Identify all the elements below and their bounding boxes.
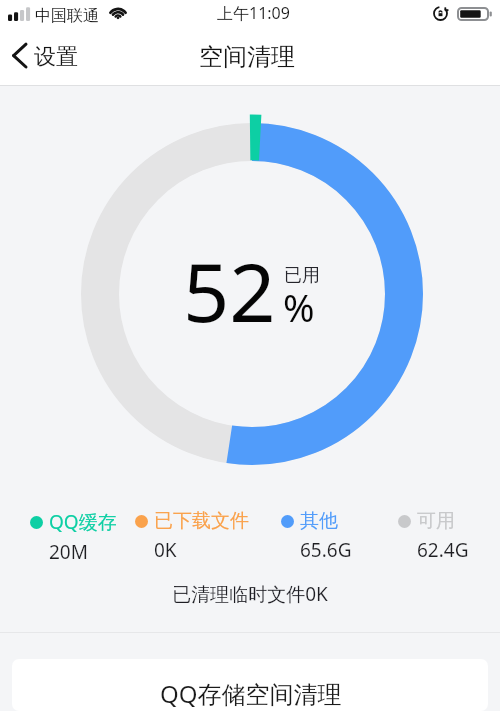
staticText: 上午11:09	[217, 2, 290, 24]
button[interactable]: 可用	[398, 509, 469, 563]
button[interactable]: 其他	[281, 509, 352, 563]
staticText: 已清理临时文件0K	[0, 581, 500, 607]
staticText: 已用	[284, 264, 320, 287]
button[interactable]: QQ存储空间清理	[12, 659, 488, 711]
staticText: 空间清理	[199, 42, 295, 72]
button[interactable]: 已下载文件	[135, 509, 249, 563]
staticText: 20M	[49, 539, 88, 565]
staticText: QQ存储空间清理	[160, 677, 342, 710]
staticText: %	[283, 281, 315, 333]
staticText: 设置	[34, 43, 78, 71]
staticText: QQ缓存	[49, 509, 117, 535]
staticText: 可用	[417, 509, 455, 533]
button[interactable]: 设置	[0, 39, 92, 79]
staticText: 62.4G	[417, 537, 469, 563]
button[interactable]: QQ缓存	[30, 509, 117, 565]
staticText: 0K	[154, 537, 177, 563]
staticText: 65.6G	[300, 537, 352, 563]
staticText: 52	[183, 235, 276, 345]
staticText: 中国联通	[35, 6, 99, 26]
staticText: 已下载文件	[154, 509, 249, 533]
staticText: 其他	[300, 509, 338, 533]
